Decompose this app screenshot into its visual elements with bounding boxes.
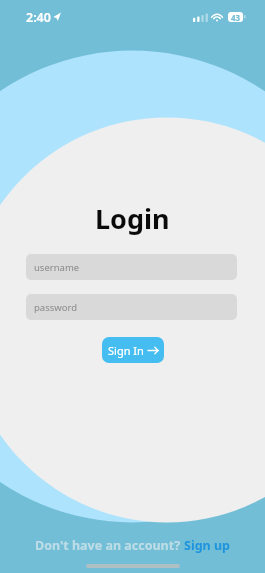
staticText: Sign In: [108, 343, 144, 358]
staticText: password: [34, 301, 78, 314]
staticText: Don't have an account?: [35, 537, 184, 554]
staticText: 43: [231, 12, 241, 22]
staticText: Sign up: [184, 537, 230, 554]
button[interactable]: password: [26, 294, 237, 320]
button[interactable]: Sign up: [184, 537, 230, 554]
button[interactable]: Sign In: [102, 337, 164, 363]
staticText: Login: [95, 200, 170, 237]
button[interactable]: username: [26, 254, 237, 280]
staticText: 2:40: [26, 9, 51, 26]
staticText: username: [34, 261, 80, 274]
other: Wi-Fi: [211, 12, 223, 22]
other: Cellular signal: [193, 13, 207, 22]
